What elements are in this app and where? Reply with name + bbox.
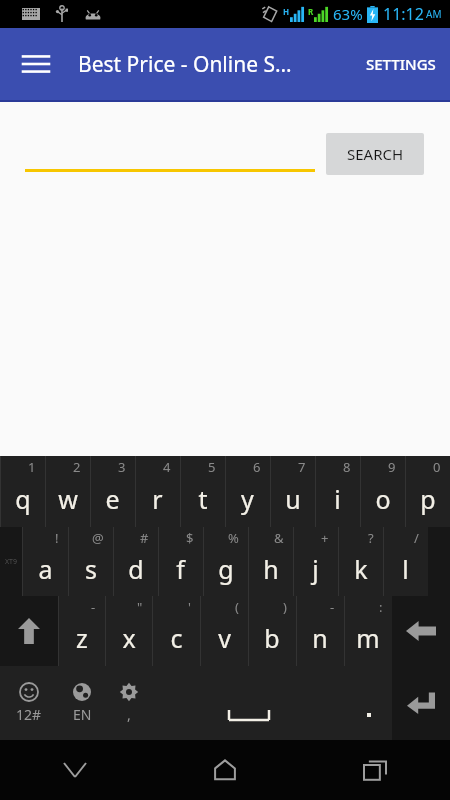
button[interactable]: Settings (105, 666, 153, 740)
staticText: q (15, 482, 31, 516)
button[interactable]: 7 (270, 456, 315, 527)
staticText: # (140, 529, 149, 547)
staticText: o (375, 482, 391, 516)
button[interactable]: 4 (135, 456, 180, 527)
staticText: 0 (433, 458, 441, 476)
staticText: XT9 (5, 557, 17, 567)
staticText: 4 (163, 458, 171, 476)
staticText: & (274, 529, 284, 547)
staticText: t (198, 482, 208, 516)
staticText: w (58, 482, 78, 516)
staticText: , (127, 705, 131, 724)
button[interactable]: Language (58, 666, 105, 740)
button[interactable]: + (293, 527, 338, 596)
button[interactable]: ( (200, 596, 248, 666)
staticText: n (312, 621, 328, 655)
staticText: s (85, 552, 97, 586)
button[interactable]: ! (22, 527, 68, 596)
staticText: 1 (28, 458, 36, 476)
staticText: x (122, 621, 136, 655)
staticText: R (308, 6, 314, 17)
button[interactable]: Enter (392, 666, 450, 740)
staticText: / (414, 529, 419, 547)
staticText: ( (235, 598, 239, 616)
button[interactable] (345, 666, 392, 740)
staticText: SEARCH (347, 144, 404, 164)
button[interactable]: 9 (360, 456, 405, 527)
staticText: ! (55, 529, 59, 547)
staticText: 9 (388, 458, 396, 476)
button[interactable]: 8 (315, 456, 360, 527)
button[interactable]: Hide keyboard (0, 740, 150, 800)
staticText: 2 (73, 458, 81, 476)
staticText: H (283, 6, 290, 17)
button[interactable]: $ (158, 527, 203, 596)
staticText: 63% (333, 4, 363, 24)
button[interactable]: - (58, 596, 105, 666)
button[interactable]: ' (152, 596, 200, 666)
staticText: i (334, 482, 341, 516)
button[interactable]: ? (338, 527, 383, 596)
button[interactable]: % (203, 527, 248, 596)
staticText: 3 (118, 458, 126, 476)
staticText: Best Price - Online S… (78, 50, 292, 79)
staticText: EN (73, 705, 92, 724)
button[interactable]: Open navigation menu (12, 40, 60, 88)
button[interactable]: " (105, 596, 152, 666)
staticText: " (137, 598, 143, 616)
staticText: u (285, 482, 301, 516)
staticText: r (152, 482, 163, 516)
button[interactable]: Shift (0, 596, 58, 666)
staticText: - (91, 598, 96, 616)
button[interactable]: 0 (405, 456, 450, 527)
staticText: @ (92, 529, 104, 547)
button[interactable]: & (248, 527, 293, 596)
staticText: 6 (253, 458, 261, 476)
staticText: l (402, 552, 409, 586)
staticText: g (218, 552, 234, 586)
staticText: ' (188, 598, 191, 616)
staticText: k (354, 552, 368, 586)
button[interactable]: / (383, 527, 428, 596)
staticText: $ (186, 529, 194, 547)
staticText: AM (426, 7, 442, 21)
staticText: - (330, 598, 335, 616)
button[interactable]: Space (153, 666, 345, 740)
staticText: 5 (208, 458, 216, 476)
button[interactable]: SEARCH (326, 133, 424, 175)
button[interactable] (25, 124, 315, 172)
button[interactable]: - (296, 596, 344, 666)
button[interactable]: Recent apps (300, 740, 450, 800)
staticText: j (312, 552, 319, 586)
button[interactable]: @ (68, 527, 113, 596)
button[interactable]: 5 (180, 456, 225, 527)
staticText: d (128, 552, 144, 586)
staticText: 12# (16, 705, 42, 724)
button[interactable]: Home (150, 740, 300, 800)
staticText: y (241, 482, 254, 516)
button[interactable]: ) (248, 596, 296, 666)
button[interactable]: Backspace (392, 596, 450, 666)
staticText: ) (283, 598, 287, 616)
button[interactable]: 3 (90, 456, 135, 527)
staticText: 8 (343, 458, 351, 476)
button[interactable]: 2 (45, 456, 90, 527)
staticText: z (76, 621, 88, 655)
button[interactable]: 6 (225, 456, 270, 527)
staticText: + (321, 529, 329, 547)
staticText: : (379, 598, 383, 616)
staticText: b (264, 621, 280, 655)
button[interactable]: # (113, 527, 158, 596)
staticText: SETTINGS (366, 54, 436, 74)
button[interactable]: SETTINGS (352, 42, 450, 86)
staticText: a (38, 552, 53, 586)
staticText: e (105, 482, 120, 516)
staticText: h (263, 552, 279, 586)
button[interactable]: 1 (0, 456, 45, 527)
staticText: 7 (298, 458, 306, 476)
staticText: f (176, 552, 185, 586)
staticText: ? (368, 529, 374, 547)
staticText: 11:12 (383, 3, 424, 25)
button[interactable]: : (344, 596, 392, 666)
button[interactable]: Symbols (0, 666, 58, 740)
